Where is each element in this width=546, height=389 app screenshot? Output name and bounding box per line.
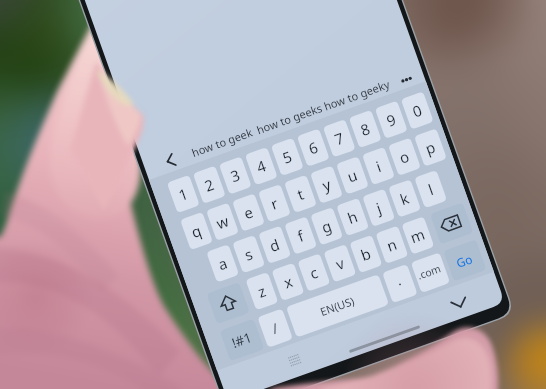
button[interactable] [0, 0, 546, 389]
